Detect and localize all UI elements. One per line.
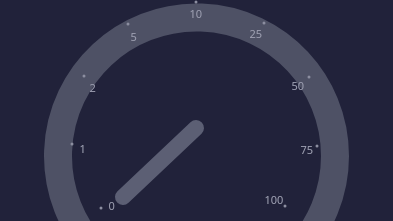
button[interactable]: Speed gauge <box>0 0 393 221</box>
